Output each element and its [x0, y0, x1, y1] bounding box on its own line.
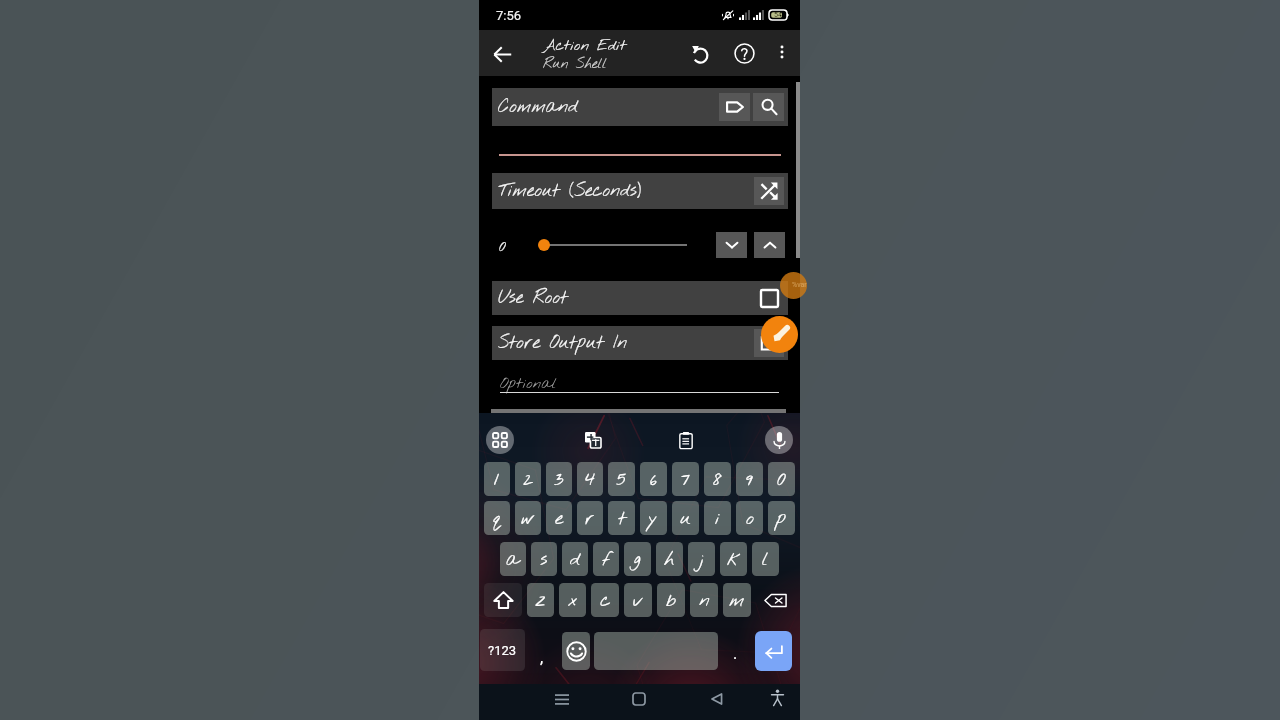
button[interactable]: o [736, 501, 763, 535]
staticText: d [570, 547, 581, 572]
button[interactable]: f [593, 542, 619, 576]
staticText: 0 [499, 237, 507, 257]
button[interactable]: 7 [672, 462, 699, 496]
staticText: p [776, 506, 787, 531]
button[interactable]: Tag [719, 93, 750, 121]
button[interactable]: r [577, 501, 603, 535]
button[interactable]: v [624, 583, 652, 617]
button[interactable]: Help [728, 37, 760, 69]
button[interactable]: q [484, 501, 510, 535]
staticText: 3 [554, 467, 564, 492]
button[interactable]: i [704, 501, 731, 535]
staticText: m [729, 588, 745, 613]
button[interactable]: 9 [736, 462, 763, 496]
button[interactable]: 2 [515, 462, 541, 496]
staticText: k [727, 547, 741, 572]
staticText: t [618, 506, 626, 531]
button[interactable]: 8 [704, 462, 731, 496]
button[interactable]: 6 [640, 462, 667, 496]
button[interactable]: Home [628, 688, 650, 710]
button[interactable]: p [768, 501, 795, 535]
staticText: Use Root [498, 286, 754, 310]
staticText: 6 [650, 467, 657, 492]
staticText: r [585, 506, 595, 531]
button[interactable]: 3 [546, 462, 572, 496]
button[interactable]: g [624, 542, 651, 576]
staticText: 5 [616, 467, 627, 492]
button[interactable]: z [527, 583, 554, 617]
staticText: Command [498, 95, 719, 119]
button[interactable]: Increase [754, 232, 785, 258]
button[interactable]: n [690, 583, 718, 617]
button[interactable]: Keyboard options [486, 426, 514, 454]
button[interactable]: Back [706, 688, 728, 710]
button[interactable]: h [656, 542, 683, 576]
button[interactable]: s [531, 542, 557, 576]
button[interactable]: Enter [755, 631, 792, 671]
staticText: 0 [777, 467, 787, 492]
button[interactable]: x [559, 583, 586, 617]
staticText: 4 [585, 467, 596, 492]
button[interactable]: t [608, 501, 635, 535]
button[interactable]: k [720, 542, 747, 576]
button[interactable]: More options [767, 37, 797, 67]
staticText: a [506, 547, 520, 572]
staticText: 7 [681, 467, 690, 492]
staticText: Action Edit [543, 36, 627, 56]
staticText: Optional [500, 374, 557, 394]
button[interactable]: 5 [608, 462, 635, 496]
button[interactable]: b [657, 583, 685, 617]
button[interactable]: Use Root [492, 281, 788, 315]
button[interactable]: . [721, 629, 749, 671]
button[interactable]: Variables [780, 272, 807, 299]
button[interactable]: c [591, 583, 619, 617]
button[interactable]: Clipboard [674, 428, 698, 452]
button[interactable]: l [752, 542, 779, 576]
button[interactable]: Edit [761, 316, 798, 353]
staticText: g [634, 547, 641, 572]
staticText: 7:56 [496, 8, 522, 23]
staticText: Store Output In [498, 331, 754, 355]
button[interactable]: Backspace [756, 583, 795, 617]
staticText: e [555, 506, 564, 531]
staticText: x [568, 588, 578, 613]
button[interactable]: j [688, 542, 715, 576]
button[interactable]: Undo [684, 37, 716, 69]
button[interactable]: Recents [551, 688, 573, 710]
button[interactable]: a [500, 542, 526, 576]
button[interactable]: d [562, 542, 588, 576]
button[interactable]: e [546, 501, 572, 535]
button[interactable]: 0 [768, 462, 795, 496]
button[interactable]: Randomize [754, 177, 784, 205]
staticText: v [633, 588, 643, 613]
staticText: i [715, 506, 720, 531]
button[interactable]: 4 [577, 462, 603, 496]
staticText: h [664, 547, 675, 572]
button[interactable]: Decrease [716, 232, 747, 258]
button[interactable]: Shift [484, 583, 522, 617]
button[interactable]: Voice input [765, 426, 793, 454]
button[interactable]: w [515, 501, 541, 535]
button[interactable]: Emoji [562, 632, 590, 670]
button[interactable]: Command [492, 88, 788, 126]
staticText: l [762, 547, 769, 572]
button[interactable]: Back [486, 38, 518, 70]
button[interactable]: ?123 [480, 629, 525, 671]
button[interactable]: 1 [484, 462, 510, 496]
button[interactable]: Store Output In [492, 326, 788, 360]
button[interactable]: u [672, 501, 699, 535]
button[interactable]: Accessibility [766, 687, 788, 709]
button[interactable]: Use Root toggle [754, 283, 784, 313]
button[interactable]: Translate [581, 428, 605, 452]
staticText: . [733, 644, 738, 663]
button[interactable]: Space [594, 632, 718, 670]
button[interactable]: Timeout slider [535, 232, 687, 258]
button[interactable]: Search [753, 93, 784, 121]
staticText: y [649, 506, 658, 531]
button[interactable]: y [640, 501, 667, 535]
button[interactable]: , [527, 629, 557, 671]
button[interactable]: m [723, 583, 751, 617]
staticText: u [680, 506, 691, 531]
button[interactable]: Browse [754, 329, 784, 357]
button[interactable]: Timeout (Seconds) [492, 173, 788, 209]
